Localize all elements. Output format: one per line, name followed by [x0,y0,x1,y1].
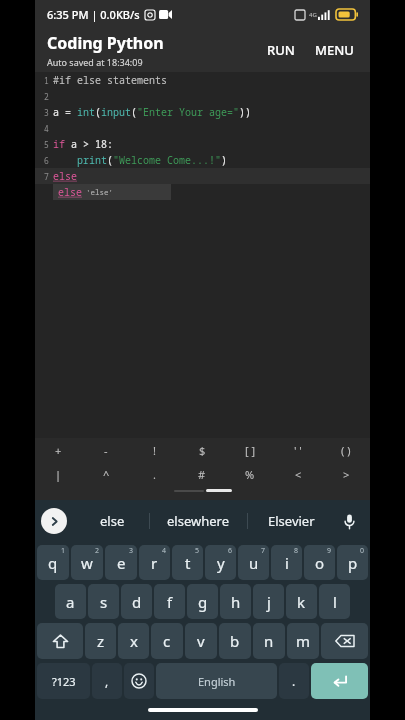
staticText: elsewhere [167,512,230,530]
button[interactable]: elsewhere [150,500,247,542]
staticText: 'else' [86,187,113,197]
staticText: [ ] [245,443,256,458]
button[interactable]: p [337,545,368,580]
button[interactable]: r [139,545,170,580]
button[interactable]: d [121,584,152,619]
button[interactable]: ( ) [322,438,370,462]
button[interactable]: # [178,462,226,486]
button[interactable]: e [105,545,137,580]
button[interactable]: v [185,623,217,659]
staticText: p [348,553,358,573]
staticText: d [132,592,142,612]
button[interactable]: MENU [307,35,362,65]
button[interactable]: else [53,184,171,200]
button[interactable]: else [75,500,149,542]
button[interactable]: [ ] [226,438,274,462]
staticText: n [264,631,274,651]
button[interactable]: Shift [37,623,83,659]
button[interactable]: Elsevier [248,500,334,542]
staticText: ?123 [52,674,76,689]
staticText: 5 [195,546,200,556]
staticText: Coding Python [47,32,164,54]
staticText: 2 [44,91,49,102]
staticText: v [197,631,205,651]
staticText: . [292,673,296,689]
button[interactable]: ^ [82,462,130,486]
staticText: 4 [162,546,167,556]
button[interactable]: b [219,623,251,659]
button[interactable]: k [286,584,317,619]
button[interactable]: z [85,623,116,659]
staticText: c [163,631,171,651]
staticText: 9 [327,546,332,556]
button[interactable]: i [271,545,302,580]
staticText: 8 [294,546,299,556]
staticText: s [100,592,108,612]
button[interactable]: ! [130,438,178,462]
button[interactable]: Enter [311,663,368,699]
button[interactable]: > [322,462,370,486]
staticText: else [100,512,125,530]
button[interactable]: ?123 [37,663,90,699]
staticText: 0 [360,546,365,556]
button[interactable]: a [55,584,86,619]
button[interactable]: w [71,545,103,580]
button[interactable]: h [220,584,251,619]
button[interactable]: RUN [259,35,303,65]
button[interactable]: . [130,462,178,486]
button[interactable]: m [287,623,319,659]
button[interactable]: o [304,545,335,580]
button[interactable]: < [274,462,322,486]
button[interactable]: - [82,438,130,462]
staticText: a [66,592,75,612]
button[interactable]: n [253,623,285,659]
button[interactable]: x [118,623,149,659]
staticText: y [217,553,225,573]
button[interactable]: $ [178,438,226,462]
staticText: r [151,553,158,573]
staticText: 3 [44,107,49,118]
staticText: | [55,467,62,482]
button[interactable]: Emoji [124,663,154,699]
button[interactable]: c [151,623,183,659]
staticText: 7 [44,171,49,182]
button[interactable]: Backspace [321,623,368,659]
button[interactable]: j [253,584,284,619]
staticText: 7 [261,546,266,556]
staticText: t [185,553,191,573]
staticText: if a > 18: [53,137,113,151]
button[interactable]: . [279,663,309,699]
staticText: , [105,673,109,689]
staticText: - [104,443,108,458]
button[interactable]: ' ' [274,438,322,462]
button[interactable]: g [187,584,218,619]
button[interactable]: | [35,462,82,486]
staticText: 6:35 PM | 0.0KB/s [47,7,140,22]
staticText: 1 [61,546,66,556]
button[interactable]: English [156,663,277,699]
staticText: ! [153,443,156,458]
staticText: l [333,592,337,612]
button[interactable]: t [172,545,203,580]
staticText: # [198,467,206,482]
staticText: 6 [228,546,233,556]
staticText: ( ) [341,443,351,458]
button[interactable]: q [37,545,69,580]
button[interactable]: u [238,545,269,580]
staticText: ^ [103,467,110,482]
button[interactable]: f [154,584,185,619]
button[interactable]: y [205,545,236,580]
button[interactable]: % [226,462,274,486]
button[interactable]: Voice input [334,500,364,542]
staticText: 3 [129,546,134,556]
button[interactable]: More options [41,508,67,534]
staticText: m [296,631,311,651]
button[interactable]: s [88,584,119,619]
button[interactable]: , [92,663,122,699]
staticText: 4G [309,11,317,19]
button[interactable]: + [35,438,82,462]
button[interactable]: l [319,584,350,619]
staticText: j [267,592,271,612]
staticText: Auto saved at 18:34:09 [47,56,143,68]
staticText: i [285,553,289,573]
